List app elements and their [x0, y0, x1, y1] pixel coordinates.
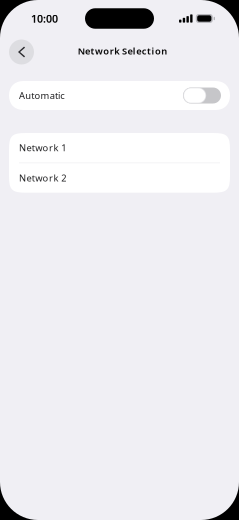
staticText: Network Selection [78, 45, 167, 57]
button[interactable]: Network 1 [9, 133, 230, 162]
staticText: Automatic [19, 89, 64, 102]
button[interactable]: Network 2 [9, 163, 230, 193]
button[interactable]: Automatic [9, 81, 230, 110]
staticText: Network 1 [19, 142, 66, 154]
staticText: 10:00 [31, 11, 58, 26]
button[interactable]: Back [9, 39, 34, 64]
staticText: Network 2 [19, 172, 66, 184]
